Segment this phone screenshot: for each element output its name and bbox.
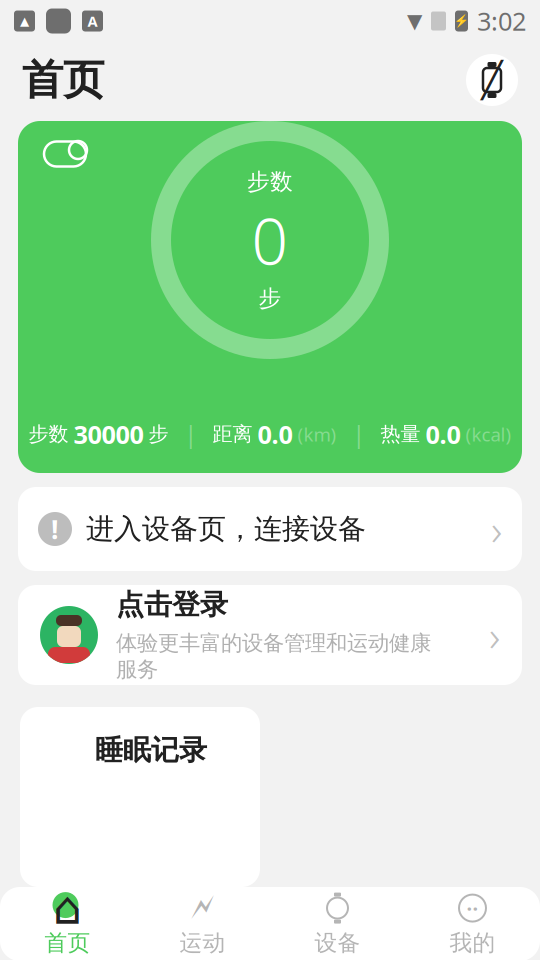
staticText: 🗲 xyxy=(191,891,214,925)
staticText: 0.0 xyxy=(257,417,292,451)
staticText: › xyxy=(489,607,500,663)
staticText: 3:02 xyxy=(477,4,526,38)
button[interactable]: 点击登录 xyxy=(18,585,522,685)
button[interactable]: ! xyxy=(18,487,522,571)
staticText: | xyxy=(352,419,364,449)
staticText: (kcal) xyxy=(465,422,511,447)
staticText: 步数 xyxy=(28,422,68,446)
staticText: A xyxy=(87,11,97,31)
staticText: 首页 xyxy=(44,929,90,957)
button[interactable]: 设备 xyxy=(270,887,405,960)
button[interactable]: 设备未连接 xyxy=(466,54,518,106)
button[interactable]: ⌂ xyxy=(0,887,135,960)
staticText: 体验更丰富的设备管理和运动健康服务 xyxy=(116,630,431,682)
staticText: 30000 xyxy=(73,417,143,451)
staticText: ·· xyxy=(466,895,478,921)
staticText: 睡眠记录 xyxy=(95,733,207,767)
button[interactable]: 🗲 xyxy=(135,887,270,960)
staticText: ! xyxy=(51,511,59,547)
staticText: 点击登录 xyxy=(116,588,228,622)
staticText: ╱ xyxy=(481,60,502,100)
staticText: | xyxy=(184,419,196,449)
staticText: 热量 xyxy=(380,422,420,446)
staticText: 步 xyxy=(258,284,281,312)
staticText: 设备 xyxy=(314,929,360,957)
staticText: 0 xyxy=(251,197,288,282)
staticText: ▲ xyxy=(20,14,29,28)
staticText: ▼ xyxy=(407,10,422,32)
staticText: ⌂ xyxy=(53,882,82,934)
staticText: 步 xyxy=(148,422,168,446)
button[interactable]: ·· xyxy=(405,887,540,960)
staticText: 0.0 xyxy=(425,417,460,451)
staticText: › xyxy=(491,501,502,557)
staticText: 步数 xyxy=(247,168,293,195)
staticText: 距离 xyxy=(212,422,252,446)
staticText: ⚡ xyxy=(454,14,469,28)
staticText: 我的 xyxy=(449,929,495,957)
staticText: (km) xyxy=(297,422,336,447)
button[interactable]: 睡眠记录 xyxy=(20,707,260,887)
staticText: 进入设备页，连接设备 xyxy=(86,512,366,546)
staticText: 首页 xyxy=(22,55,104,105)
staticText: 运动 xyxy=(179,929,225,957)
